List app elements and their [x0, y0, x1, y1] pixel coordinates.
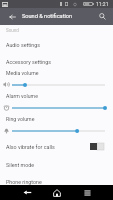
button[interactable]: Back	[13, 185, 41, 200]
staticText: Silent mode	[6, 162, 34, 168]
button[interactable]: Navigate up	[4, 8, 20, 25]
staticText: Alarm volume	[6, 93, 38, 99]
button[interactable]: Media volume	[0, 68, 113, 90]
button[interactable]: Home	[43, 185, 71, 200]
button[interactable]: Silent mode	[0, 156, 113, 173]
button[interactable]: Audio settings	[0, 36, 113, 53]
button[interactable]: Search	[94, 8, 110, 25]
staticText: Media volume	[6, 70, 39, 76]
button[interactable]: Phone ringtone	[0, 173, 113, 190]
button[interactable]: Recent apps	[73, 185, 101, 200]
button[interactable]: Also vibrate for calls	[0, 138, 113, 155]
staticText: Sound	[6, 28, 19, 33]
button[interactable]: Alarm volume	[0, 91, 113, 113]
staticText: Sound & notification	[22, 13, 73, 20]
staticText: 11:21	[96, 1, 109, 7]
staticText: Accessory settings	[6, 59, 51, 65]
staticText: Ring volume	[6, 116, 35, 122]
staticText: Phone ringtone	[6, 179, 42, 185]
button[interactable]: Accessory settings	[0, 53, 113, 70]
staticText: Audio settings	[6, 42, 40, 48]
button[interactable]: Ring volume	[0, 114, 113, 136]
staticText: Also vibrate for calls	[6, 144, 55, 150]
